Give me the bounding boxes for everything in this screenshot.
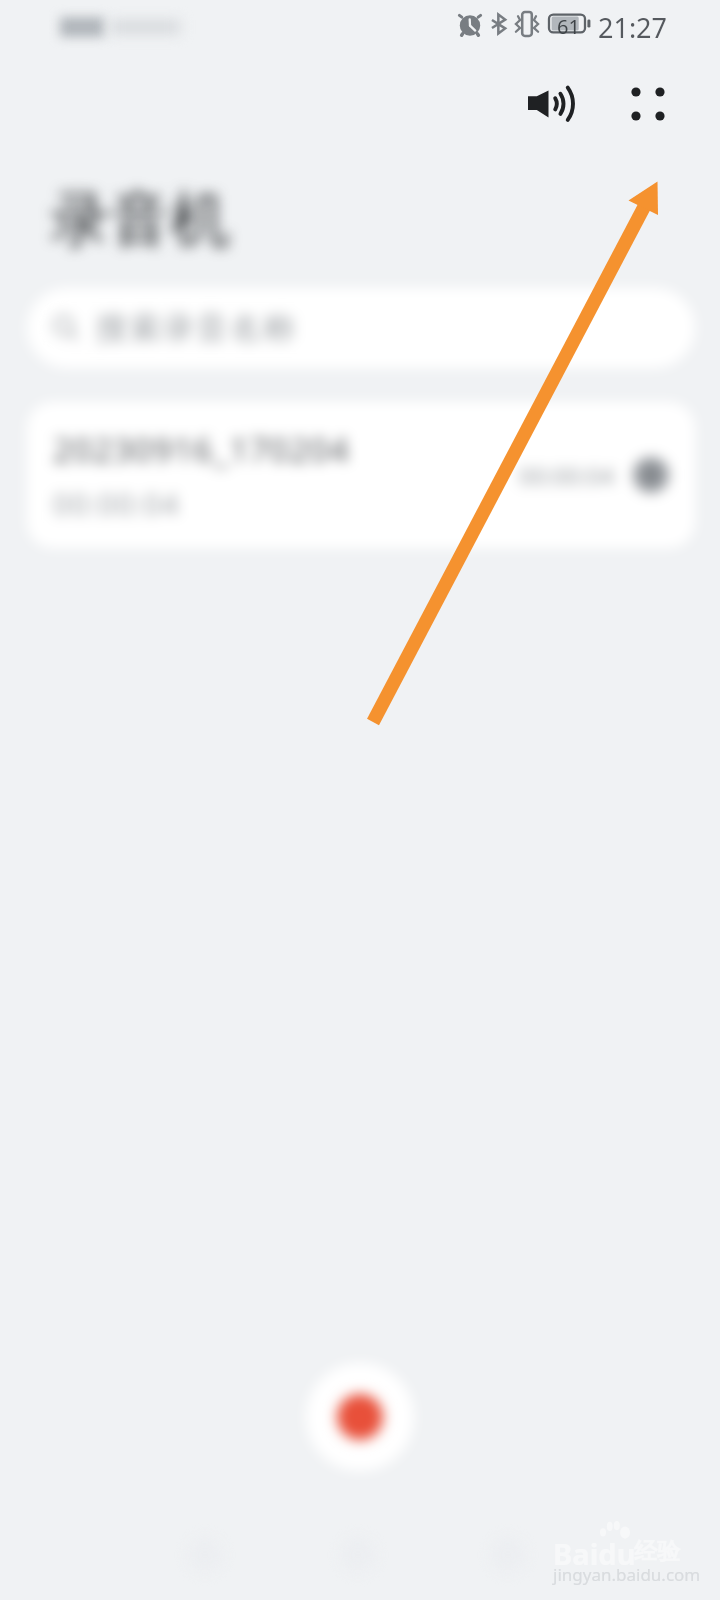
button[interactable]: Record	[306, 1363, 414, 1471]
staticText: Baidu	[553, 1534, 636, 1573]
staticText: 搜索录音名称	[95, 308, 296, 348]
button[interactable]: 20230916_170204	[27, 402, 695, 548]
staticText: 经验	[634, 1537, 680, 1566]
staticText: 61	[557, 13, 580, 39]
button[interactable]: More options	[600, 56, 696, 152]
staticText: 21:27	[598, 9, 668, 46]
staticText: 20230916_170204	[53, 427, 350, 472]
staticText: jingyan.baidu.com	[553, 1563, 701, 1586]
button[interactable]: 搜索录音名称	[27, 288, 695, 368]
staticText: 00:00:04	[53, 484, 181, 523]
button[interactable]: Speaker	[503, 56, 599, 152]
staticText: 录音机	[50, 182, 230, 258]
staticText: 00:00:04	[519, 459, 615, 492]
